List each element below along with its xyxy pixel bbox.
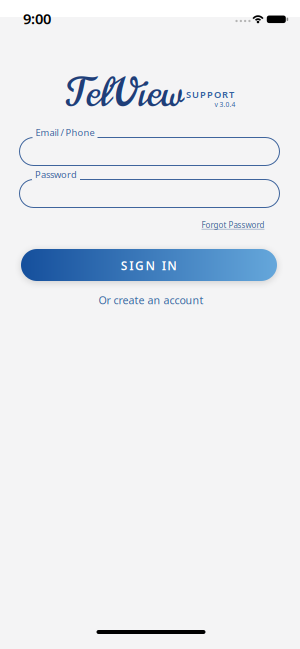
staticText: SIGN IN [121,257,177,273]
staticText: 9:00 [23,9,51,28]
staticText: Forgot Password [201,220,264,230]
staticText: TelView [66,66,182,120]
staticText: S U P P O R T [186,88,234,101]
staticText: Email / Phone [35,126,94,139]
staticText: Or create an account [98,293,203,307]
staticText: Password [35,168,77,181]
staticText: v 3.0.4 [214,100,235,109]
